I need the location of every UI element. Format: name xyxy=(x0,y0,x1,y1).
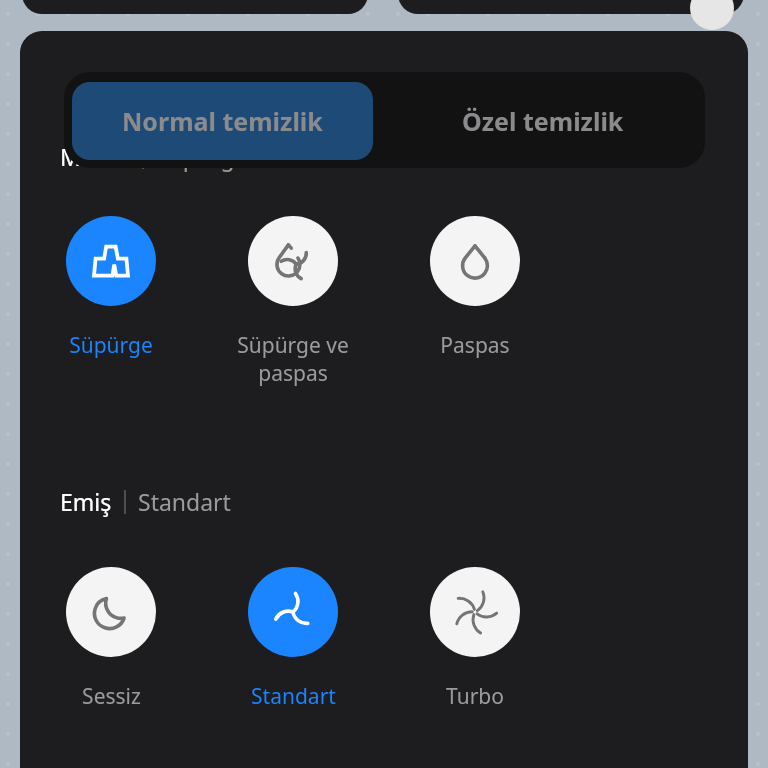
staticText: Normal temizlik xyxy=(122,104,323,138)
staticText: Süpürge xyxy=(69,331,153,360)
button[interactable]: Özel temizlik xyxy=(389,82,697,160)
staticText: Turbo xyxy=(446,682,504,711)
button[interactable]: Turbo xyxy=(430,567,520,657)
button[interactable]: Turbo xyxy=(385,682,565,711)
button[interactable]: Süpürge xyxy=(66,216,156,306)
button[interactable]: Paspas xyxy=(430,216,520,306)
button[interactable]: Sessiz xyxy=(21,682,201,711)
button[interactable]: Paspas xyxy=(385,331,565,360)
button[interactable]: Süpürge ve paspas xyxy=(203,331,383,387)
button[interactable]: Süpürge xyxy=(21,331,201,360)
staticText: Süpürge xyxy=(156,141,248,172)
staticText: Süpürge ve paspas xyxy=(237,331,349,387)
staticText: Özel temizlik xyxy=(462,104,624,138)
button[interactable]: Sessiz xyxy=(66,567,156,657)
button[interactable]: Standart xyxy=(248,567,338,657)
staticText: Sessiz xyxy=(82,682,141,711)
staticText: Paspas xyxy=(440,331,510,360)
button[interactable]: Süpürge ve paspas xyxy=(248,216,338,306)
button[interactable]: Normal temizlik xyxy=(72,82,373,160)
staticText: Standart xyxy=(251,682,336,711)
staticText: Standart xyxy=(138,486,231,517)
staticText: Modül xyxy=(60,141,130,172)
staticText: Emiş xyxy=(60,486,112,517)
button[interactable]: Standart xyxy=(203,682,383,711)
